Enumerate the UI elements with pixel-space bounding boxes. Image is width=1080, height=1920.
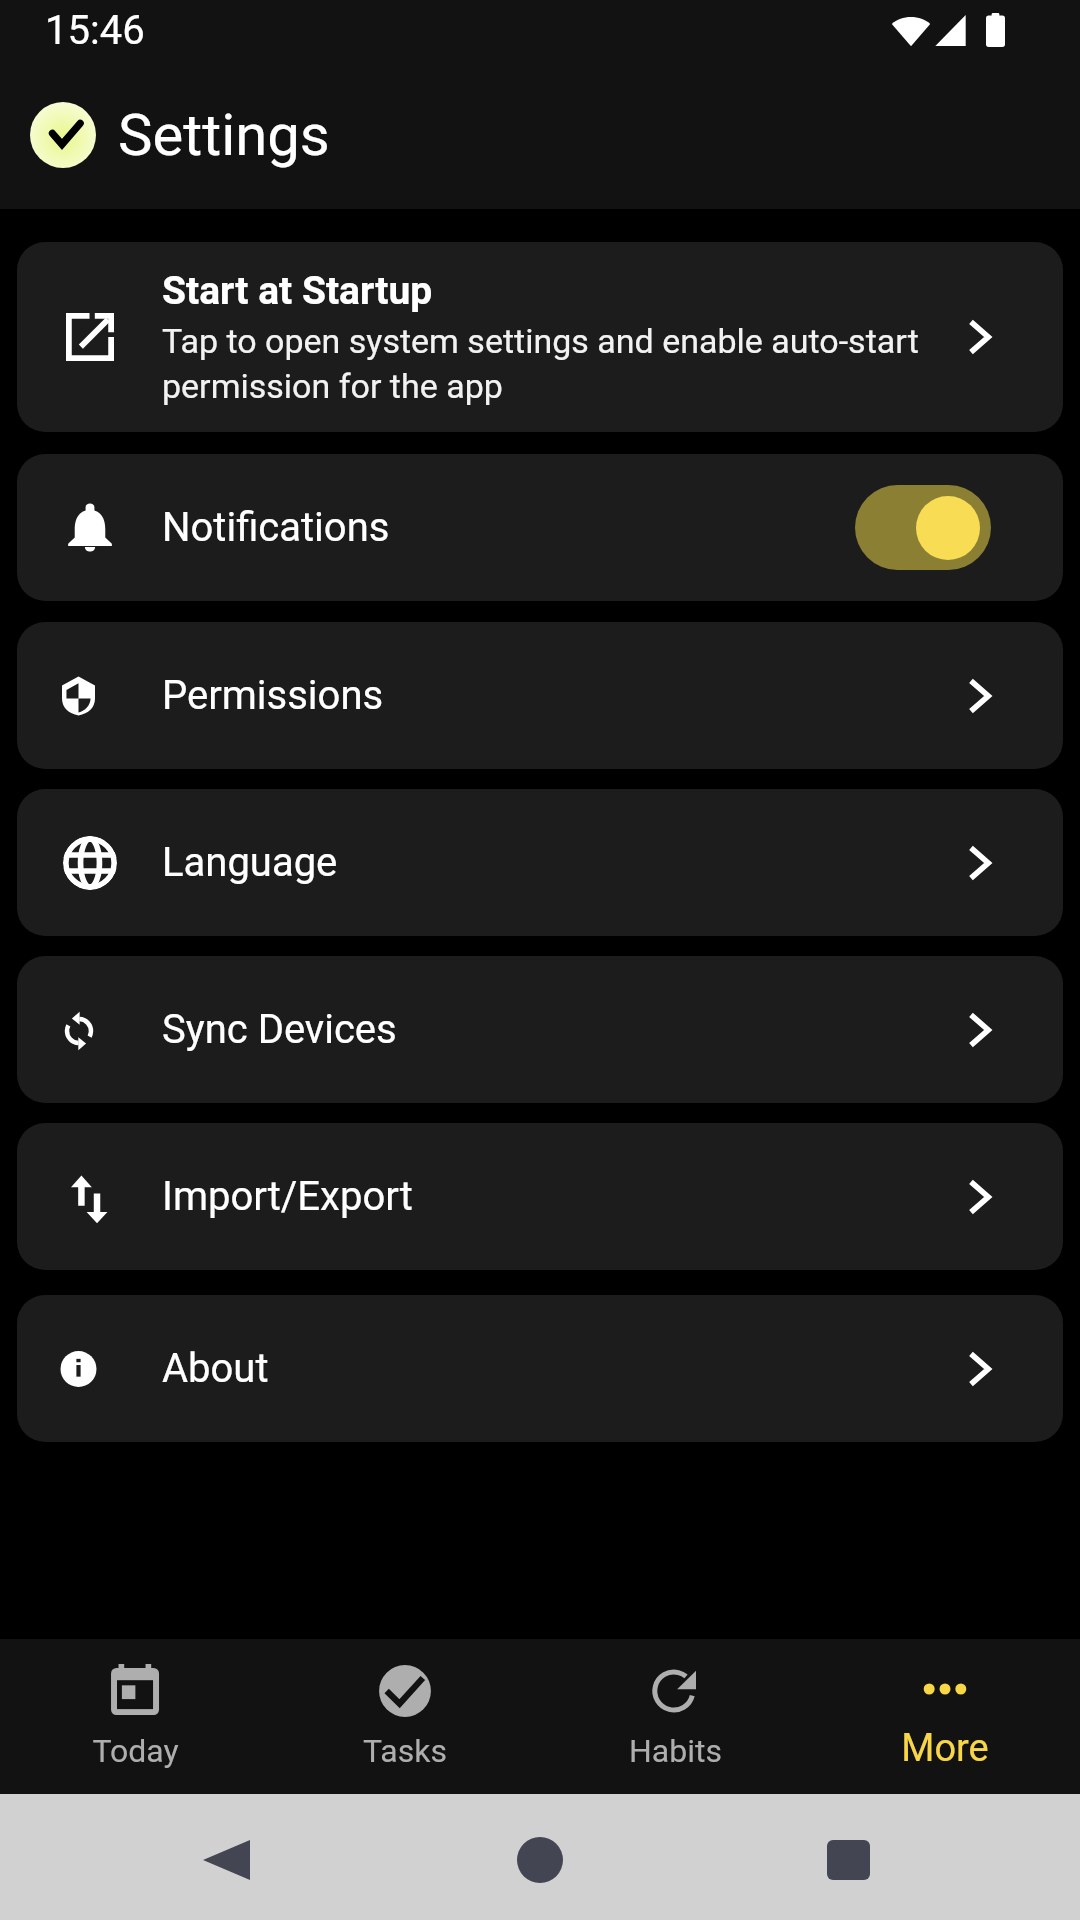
staticText: Start at Startup (162, 268, 433, 314)
button[interactable]: Import/Export (17, 1123, 1063, 1270)
button[interactable]: About (17, 1295, 1063, 1442)
staticText: About (162, 1345, 968, 1392)
button[interactable]: Toggle notifications (855, 485, 991, 570)
button[interactable]: Language (17, 789, 1063, 936)
staticText: Tasks (363, 1732, 447, 1770)
staticText: More (901, 1726, 989, 1771)
button[interactable]: Start at Startup (17, 242, 1063, 432)
staticText: Settings (118, 101, 330, 169)
staticText: Language (162, 839, 968, 886)
button[interactable]: More (810, 1639, 1080, 1794)
staticText: Permissions (162, 672, 968, 719)
button[interactable]: Permissions (17, 622, 1063, 769)
staticText: Tap to open system settings and enable a… (162, 321, 952, 407)
staticText: Today (92, 1732, 179, 1770)
button[interactable]: Habits (540, 1639, 810, 1794)
staticText: Notifications (162, 504, 855, 551)
button[interactable]: Notifications (17, 454, 1063, 601)
staticText: Habits (629, 1732, 722, 1770)
staticText: 15:46 (45, 7, 145, 54)
staticText: Sync Devices (162, 1006, 968, 1053)
button[interactable]: Tasks (270, 1639, 540, 1794)
button[interactable]: Today (0, 1639, 270, 1794)
staticText: Import/Export (162, 1173, 968, 1220)
button[interactable]: Sync Devices (17, 956, 1063, 1103)
